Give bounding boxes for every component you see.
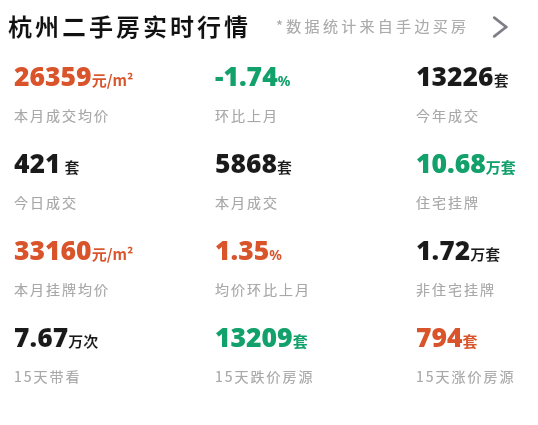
staticText: 15天跌价房源 (215, 366, 315, 386)
button[interactable]: 杭州二手房实时行情 (0, 0, 538, 58)
staticText: 15天涨价房源 (416, 366, 516, 386)
button[interactable]: 794套 (402, 319, 524, 406)
staticText: 1.35% (215, 232, 282, 268)
button[interactable]: 13209套 (201, 319, 402, 406)
staticText: 15天带看 (14, 366, 82, 386)
other: More details (479, 7, 519, 47)
staticText: 1.72万套 (416, 232, 501, 268)
staticText: 10.68万套 (416, 145, 516, 181)
button[interactable]: 5868套 (201, 145, 402, 232)
staticText: 794套 (416, 319, 478, 355)
button[interactable]: 7.67万次 (0, 319, 201, 406)
staticText: *数据统计来自手边买房 (276, 15, 470, 37)
button[interactable]: 1.35% (201, 232, 402, 319)
staticText: 今日成交 (14, 192, 78, 212)
staticText: 7.67万次 (14, 319, 99, 355)
staticText: 26359元/m² (14, 58, 134, 94)
staticText: 33160元/m² (14, 232, 134, 268)
staticText: 本月成交 (215, 192, 279, 212)
staticText: 本月成交均价 (14, 105, 110, 125)
button[interactable]: -1.74% (201, 58, 402, 145)
button[interactable]: 421 套 (0, 145, 201, 232)
staticText: 13209套 (215, 319, 308, 355)
staticText: 环比上月 (215, 105, 279, 125)
button[interactable]: 13226套 (402, 58, 524, 145)
staticText: 均价环比上月 (215, 279, 311, 299)
staticText: 非住宅挂牌 (416, 279, 496, 299)
staticText: 杭州二手房实时行情 (8, 8, 251, 43)
staticText: -1.74% (215, 58, 291, 94)
staticText: 住宅挂牌 (416, 192, 480, 212)
staticText: 今年成交 (416, 105, 480, 125)
button[interactable]: 1.72万套 (402, 232, 524, 319)
button[interactable]: 33160元/m² (0, 232, 201, 319)
staticText: 13226套 (416, 58, 509, 94)
staticText: 本月挂牌均价 (14, 279, 110, 299)
button[interactable]: 10.68万套 (402, 145, 524, 232)
button[interactable]: 26359元/m² (0, 58, 201, 145)
staticText: 5868套 (215, 145, 293, 181)
staticText: 421 套 (14, 145, 80, 181)
